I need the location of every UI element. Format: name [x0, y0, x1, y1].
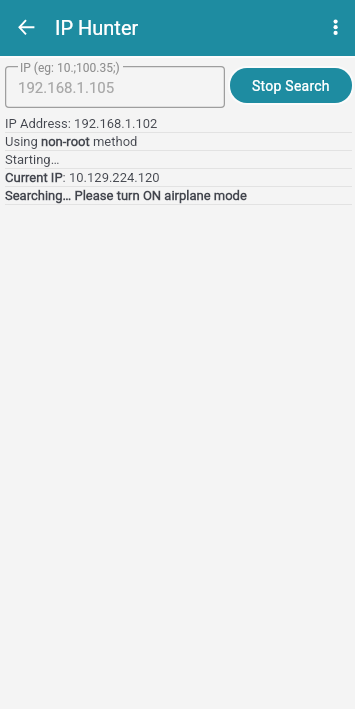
- staticText: Stop Search: [252, 78, 330, 94]
- button[interactable]: Searching… Please turn ON airplane mode: [0, 187, 355, 205]
- button[interactable]: More options: [316, 7, 355, 47]
- button[interactable]: Current IP: 10.129.224.120: [0, 169, 355, 187]
- staticText: IP Hunter: [55, 16, 139, 39]
- staticText: Starting…: [5, 152, 60, 167]
- button[interactable]: Starting…: [0, 151, 355, 169]
- button[interactable]: Stop Search: [230, 68, 352, 103]
- staticText: Using non-root method: [5, 134, 138, 149]
- button[interactable]: IP Address: 192.168.1.102: [0, 115, 355, 133]
- staticText: IP (eg: 10.;100.35;): [20, 61, 120, 75]
- staticText: Searching… Please turn ON airplane mode: [5, 188, 247, 203]
- staticText: IP Address: 192.168.1.102: [5, 116, 158, 131]
- button[interactable]: Back: [7, 7, 47, 47]
- staticText: Current IP: 10.129.224.120: [5, 170, 160, 185]
- button[interactable]: Using non-root method: [0, 133, 355, 151]
- button[interactable]: 192.168.1.105: [5, 66, 225, 108]
- staticText: 192.168.1.105: [18, 79, 115, 97]
